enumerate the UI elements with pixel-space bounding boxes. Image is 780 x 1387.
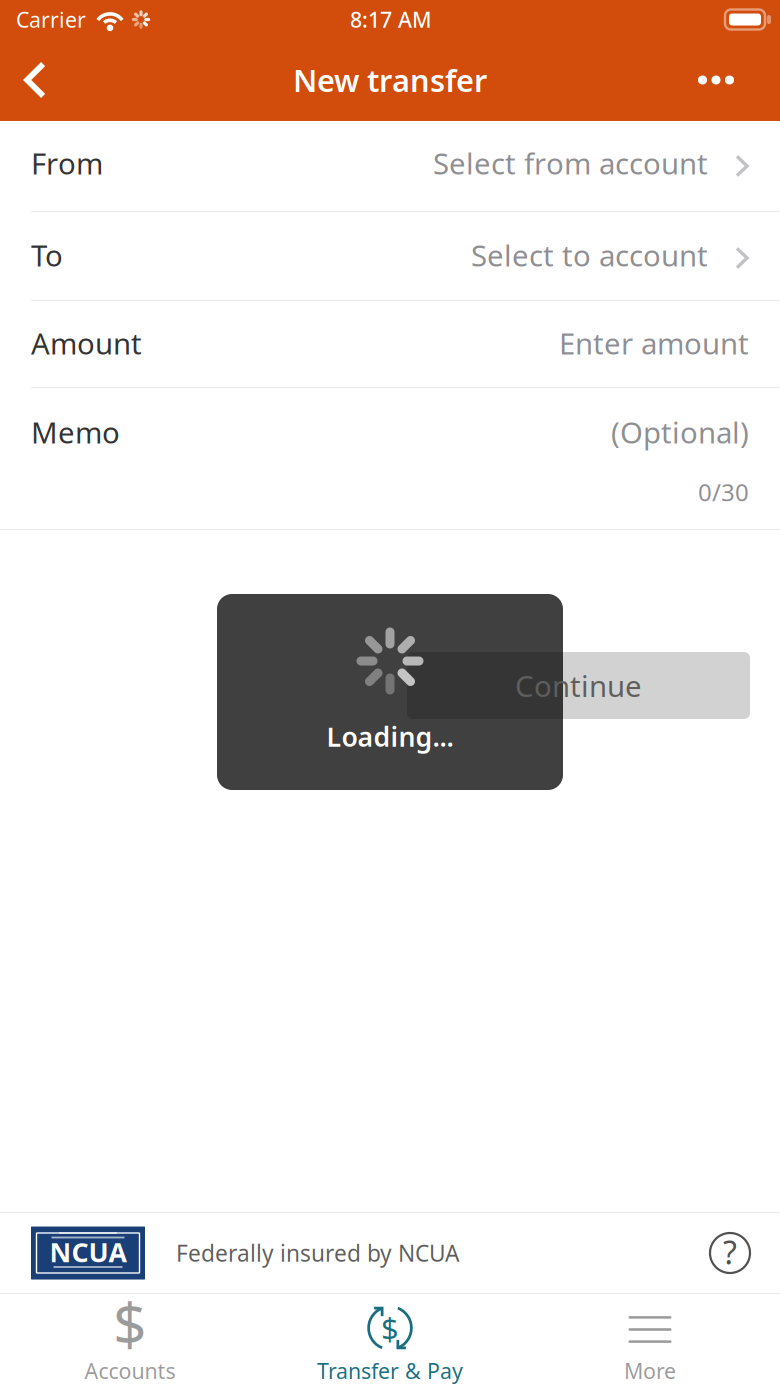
staticText: From bbox=[31, 143, 103, 182]
staticText: Enter amount bbox=[559, 323, 749, 362]
staticText: Memo bbox=[31, 412, 120, 451]
button[interactable]: From bbox=[0, 121, 780, 211]
staticText: Continue bbox=[515, 666, 642, 705]
staticText: Amount bbox=[31, 323, 142, 362]
staticText: (Optional) bbox=[611, 412, 749, 451]
staticText: Select from account bbox=[433, 143, 708, 182]
staticText: $ bbox=[113, 1284, 147, 1362]
staticText: 0/30 bbox=[698, 476, 749, 508]
button[interactable] bbox=[407, 652, 750, 719]
button[interactable]: More bbox=[520, 1294, 780, 1387]
staticText: Carrier bbox=[16, 5, 86, 34]
staticText: ? bbox=[723, 1231, 737, 1273]
staticText: Select to account bbox=[471, 235, 708, 274]
staticText: More bbox=[624, 1357, 676, 1385]
staticText: New transfer bbox=[293, 60, 487, 100]
staticText: Federally insured by NCUA bbox=[176, 1238, 459, 1268]
button[interactable]: $ bbox=[0, 1294, 260, 1387]
button[interactable]: Back bbox=[0, 48, 68, 112]
button[interactable]: More options bbox=[658, 48, 780, 112]
staticText: To bbox=[31, 235, 63, 274]
staticText: Accounts bbox=[84, 1357, 175, 1385]
button[interactable]: Amount bbox=[0, 301, 780, 387]
staticText: 8:17 AM bbox=[350, 5, 432, 34]
staticText: Transfer & Pay bbox=[317, 1357, 463, 1385]
staticText: NCUA bbox=[49, 1234, 126, 1270]
button[interactable]: To bbox=[0, 212, 780, 300]
button[interactable]: Help bbox=[710, 1233, 780, 1273]
button[interactable]: $ bbox=[260, 1294, 520, 1387]
staticText: $ bbox=[381, 1308, 399, 1348]
staticText: Loading... bbox=[326, 719, 453, 754]
